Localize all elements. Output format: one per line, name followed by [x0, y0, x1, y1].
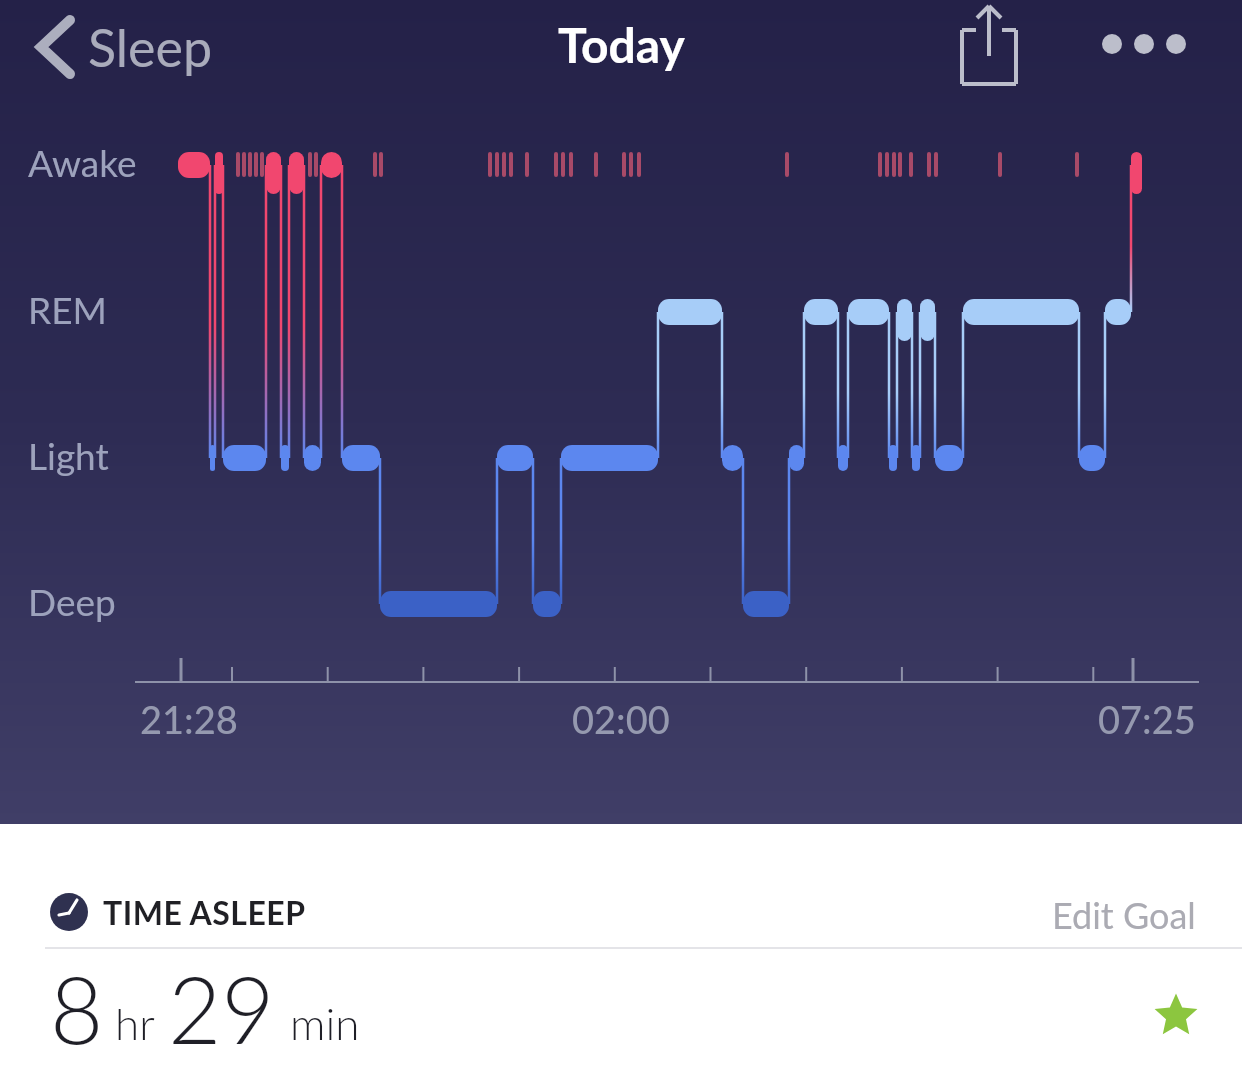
staticText: TIME ASLEEP: [103, 893, 306, 931]
staticText: 21:28: [140, 696, 238, 742]
staticText: 29: [168, 953, 275, 1063]
staticText: Light: [28, 433, 109, 477]
button[interactable]: [1098, 30, 1190, 58]
staticText: Edit Goal: [1052, 893, 1196, 936]
staticText: 07:25: [1098, 696, 1196, 742]
staticText: Today: [558, 16, 685, 74]
staticText: hr: [115, 997, 155, 1050]
staticText: min: [290, 997, 360, 1050]
button[interactable]: Edit Goal: [0, 893, 1242, 936]
button[interactable]: Sleep: [30, 10, 219, 84]
staticText: Awake: [28, 140, 137, 184]
staticText: 8: [50, 953, 104, 1063]
staticText: 02:00: [572, 696, 670, 742]
staticText: Sleep: [88, 16, 213, 78]
button[interactable]: [946, 0, 1030, 92]
staticText: REM: [28, 287, 107, 331]
staticText: Deep: [28, 579, 116, 623]
